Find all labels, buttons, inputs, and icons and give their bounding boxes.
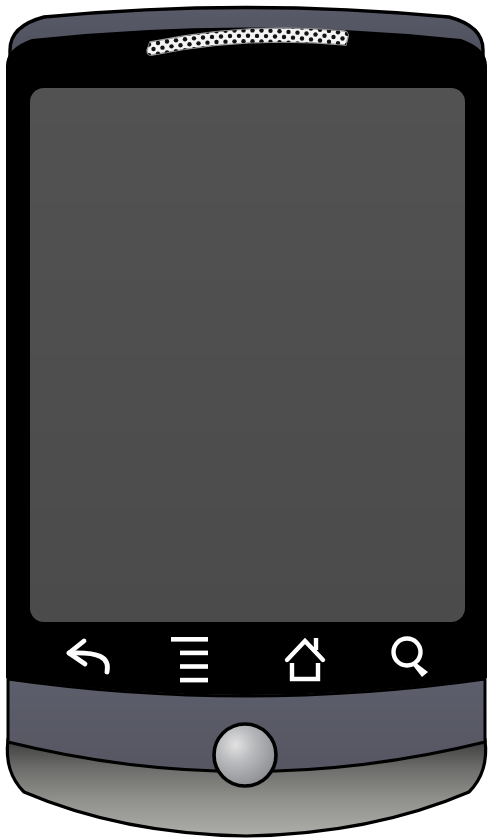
button[interactable]: Trackball	[214, 724, 276, 786]
button[interactable]: Back	[60, 632, 120, 688]
button[interactable]: Home	[277, 632, 335, 688]
button[interactable]: Menu	[166, 632, 224, 688]
button[interactable]: Search	[383, 632, 441, 688]
